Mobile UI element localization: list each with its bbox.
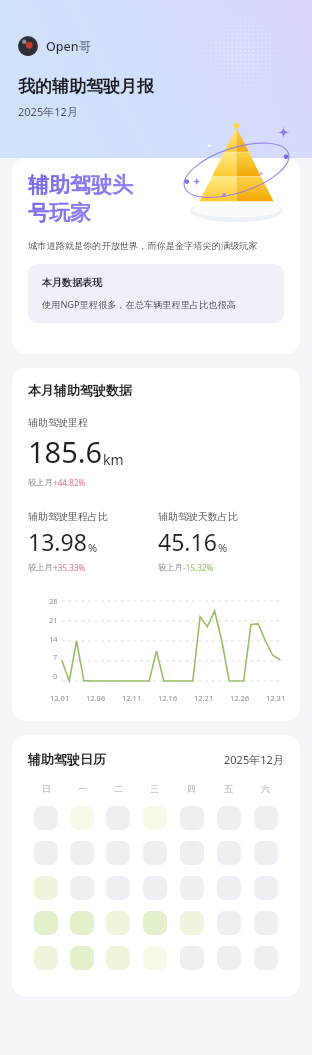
staticText: Open哥 (46, 38, 92, 55)
button[interactable]: Day cell (180, 806, 204, 830)
button[interactable]: Day cell (70, 911, 94, 935)
staticText: 较上月 (28, 562, 53, 572)
staticText: 12.16 (158, 693, 178, 703)
staticText: 12.11 (122, 693, 142, 703)
staticText: 7 (53, 652, 58, 662)
button[interactable]: Day cell (180, 841, 204, 865)
staticText: 13.98 (28, 526, 87, 557)
staticText: 使用NGP里程很多，在总车辆里程里占比也很高 (42, 298, 236, 311)
button[interactable]: Day cell (70, 876, 94, 900)
button[interactable]: 辅助驾驶日历 (12, 735, 300, 997)
staticText: +44.82% (53, 477, 86, 488)
button[interactable]: Day cell (254, 841, 278, 865)
button[interactable]: Day cell (106, 946, 130, 970)
button[interactable]: Day cell (217, 911, 241, 935)
staticText: 辅助驾驶里程 (28, 416, 88, 429)
button[interactable]: Day cell (34, 841, 58, 865)
button[interactable]: Day cell (106, 911, 130, 935)
staticText: 四 (187, 783, 196, 794)
staticText: 12.21 (194, 693, 214, 703)
button[interactable]: Day cell (34, 806, 58, 830)
button[interactable]: Day cell (217, 876, 241, 900)
staticText: 辅助驾驶天数占比 (158, 510, 238, 523)
button[interactable]: Day cell (70, 841, 94, 865)
staticText: 14 (49, 634, 58, 644)
button[interactable]: Day cell (217, 806, 241, 830)
button[interactable]: 本月辅助驾驶数据 (12, 368, 300, 721)
button[interactable]: Day cell (254, 806, 278, 830)
staticText: 城市道路就是你的开放世界，而你是金字塔尖的满级玩家 (28, 240, 258, 252)
button[interactable]: Day cell (180, 911, 204, 935)
staticText: 我的辅助驾驶月报 (18, 76, 154, 97)
staticText: 三 (150, 783, 159, 794)
staticText: 辅助驾驶里程占比 (28, 510, 108, 523)
staticText: 0 (53, 671, 58, 681)
staticText: 28 (49, 596, 58, 606)
staticText: 21 (49, 615, 58, 625)
staticText: 较上月 (158, 562, 183, 572)
staticText: 45.16 (158, 526, 217, 557)
button[interactable]: Day cell (180, 946, 204, 970)
staticText: -15.32% (183, 562, 214, 573)
button[interactable]: Day cell (34, 876, 58, 900)
staticText: 12.01 (50, 693, 70, 703)
staticText: 六 (261, 783, 270, 794)
button[interactable]: 本月数据表现 (28, 264, 284, 323)
button[interactable] (12, 158, 300, 354)
staticText: 12.26 (230, 693, 250, 703)
staticText: 本月数据表现 (42, 276, 102, 289)
button[interactable]: 辅助驾驶里程占比 (28, 510, 158, 573)
staticText: 185.6 (28, 432, 103, 471)
button[interactable]: Day cell (70, 806, 94, 830)
staticText: 二 (114, 783, 123, 794)
staticText: 一 (78, 783, 87, 794)
button[interactable]: Day cell (106, 841, 130, 865)
button[interactable]: Day cell (143, 841, 167, 865)
button[interactable]: Day cell (217, 946, 241, 970)
button[interactable]: Day cell (106, 876, 130, 900)
staticText: 2025年12月 (18, 104, 78, 119)
button[interactable]: Day cell (217, 841, 241, 865)
staticText: 号玩家 (28, 200, 91, 226)
button[interactable]: Day cell (34, 911, 58, 935)
button[interactable]: Day cell (143, 876, 167, 900)
staticText: 12.06 (86, 693, 106, 703)
staticText: % (88, 540, 98, 555)
button[interactable]: Day cell (254, 946, 278, 970)
staticText: 较上月 (28, 477, 53, 487)
button[interactable]: Day cell (254, 911, 278, 935)
button[interactable]: Day cell (143, 946, 167, 970)
staticText: 辅助驾驶头 (28, 172, 133, 198)
button[interactable]: 辅助驾驶天数占比 (158, 510, 288, 573)
button[interactable]: Day cell (143, 806, 167, 830)
button[interactable]: Open哥 (18, 36, 92, 56)
button[interactable]: Day cell (254, 876, 278, 900)
button[interactable]: Day cell (180, 876, 204, 900)
staticText: 五 (224, 783, 233, 794)
staticText: +35.33% (53, 562, 86, 573)
button[interactable]: Day cell (34, 946, 58, 970)
button[interactable]: Day cell (106, 806, 130, 830)
staticText: 辅助驾驶日历 (28, 751, 106, 767)
staticText: 本月辅助驾驶数据 (28, 382, 132, 398)
button[interactable]: Day cell (70, 946, 94, 970)
staticText: 12.31 (266, 693, 286, 703)
button[interactable]: Day cell (143, 911, 167, 935)
staticText: km (103, 450, 124, 469)
staticText: 2025年12月 (224, 752, 284, 767)
staticText: 日 (42, 783, 51, 794)
staticText: % (218, 540, 228, 555)
